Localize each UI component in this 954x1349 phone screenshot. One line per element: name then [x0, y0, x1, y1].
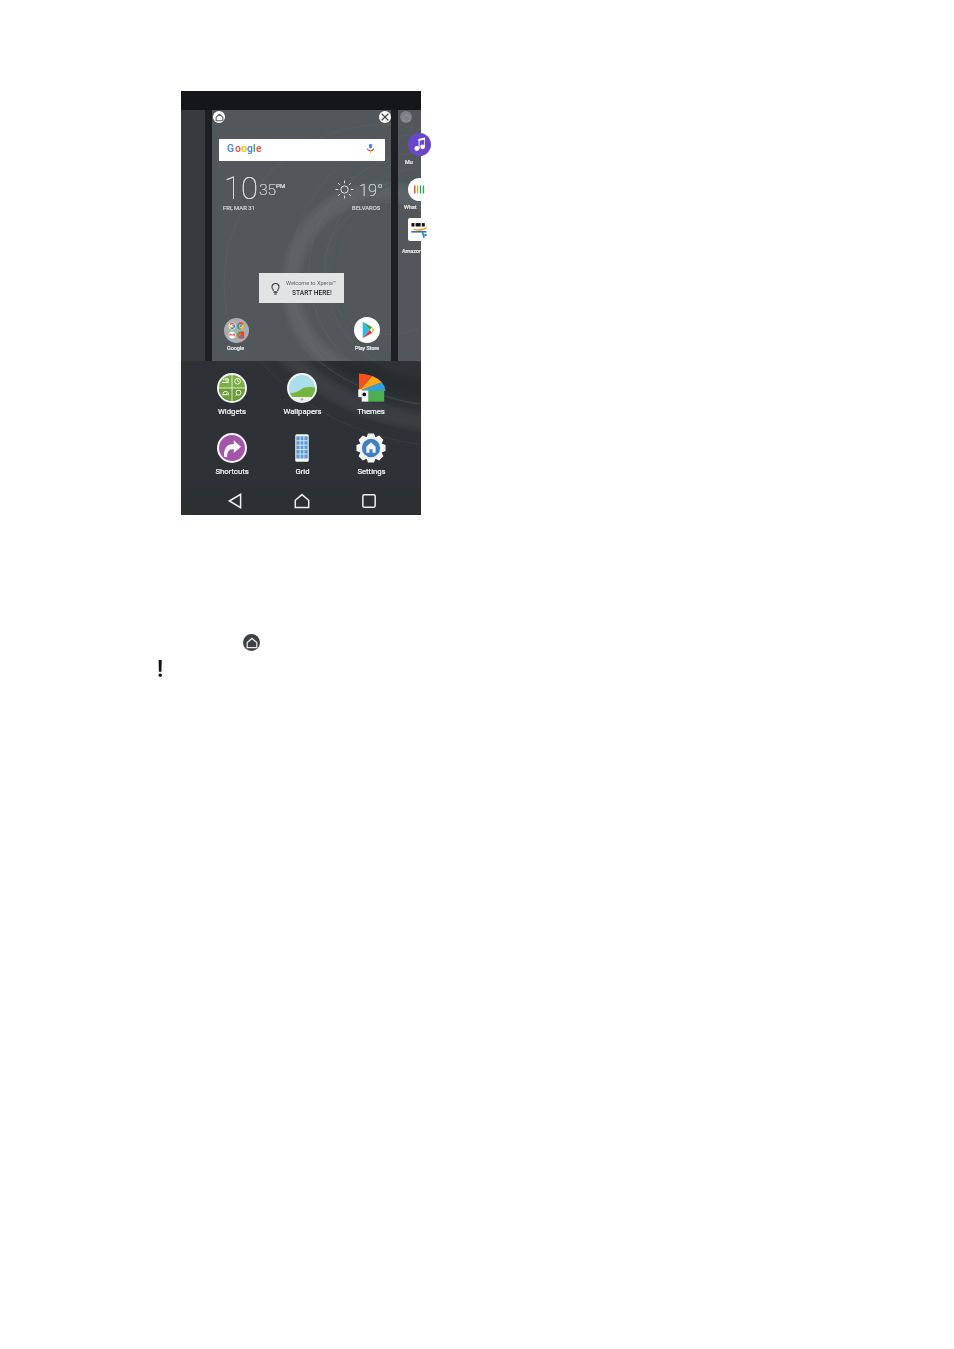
- staticText: o: [241, 142, 247, 154]
- button[interactable]: Wallpapers: [271, 373, 333, 416]
- staticText: Welcome to Xperia™: [286, 280, 337, 287]
- staticText: Play Store: [355, 345, 380, 351]
- staticText: Shortcuts: [215, 467, 249, 476]
- staticText: Google: [227, 345, 245, 351]
- staticText: Settings: [357, 467, 386, 476]
- staticText: BELVAROS: [352, 205, 381, 212]
- staticText: l: [253, 142, 256, 154]
- staticText: Mu: [405, 159, 413, 165]
- staticText: PM: [276, 182, 286, 189]
- button[interactable]: Mu: [398, 110, 421, 362]
- button[interactable]: Widgets: [201, 373, 263, 416]
- button[interactable]: Remove screen: [379, 111, 391, 123]
- staticText: 35: [259, 181, 276, 199]
- staticText: !: [157, 656, 164, 683]
- staticText: FRI, MAR 31: [223, 205, 255, 212]
- button[interactable]: Grid: [271, 433, 333, 476]
- staticText: Wallpapers: [283, 407, 322, 416]
- button[interactable]: Home: [289, 488, 315, 514]
- staticText: e: [256, 142, 262, 154]
- button[interactable]: Welcome to Xperia™: [259, 273, 344, 303]
- staticText: Widgets: [218, 407, 246, 416]
- button[interactable]: Google: [210, 318, 262, 351]
- staticText: Amazon: [402, 248, 422, 254]
- button[interactable]: Play Store: [341, 317, 393, 351]
- staticText: g: [247, 142, 253, 154]
- button[interactable]: Shortcuts: [201, 433, 263, 476]
- staticText: 10: [224, 170, 258, 206]
- button[interactable]: G: [219, 139, 385, 161]
- button[interactable]: Set as home screen: [212, 110, 391, 362]
- staticText: G: [227, 142, 235, 154]
- button[interactable]: Recent apps: [356, 488, 382, 514]
- button[interactable]: Set as home screen: [213, 111, 225, 123]
- staticText: Grid: [295, 467, 310, 476]
- button[interactable]: Themes: [340, 373, 402, 416]
- staticText: Themes: [357, 407, 385, 416]
- staticText: What: [404, 204, 417, 210]
- staticText: 19°: [359, 181, 384, 200]
- button[interactable]: Home screen icon: [243, 634, 260, 651]
- staticText: START HERE!: [292, 289, 332, 297]
- button[interactable]: Back: [222, 488, 248, 514]
- button[interactable]: Settings: [340, 433, 402, 476]
- staticText: o: [235, 142, 241, 154]
